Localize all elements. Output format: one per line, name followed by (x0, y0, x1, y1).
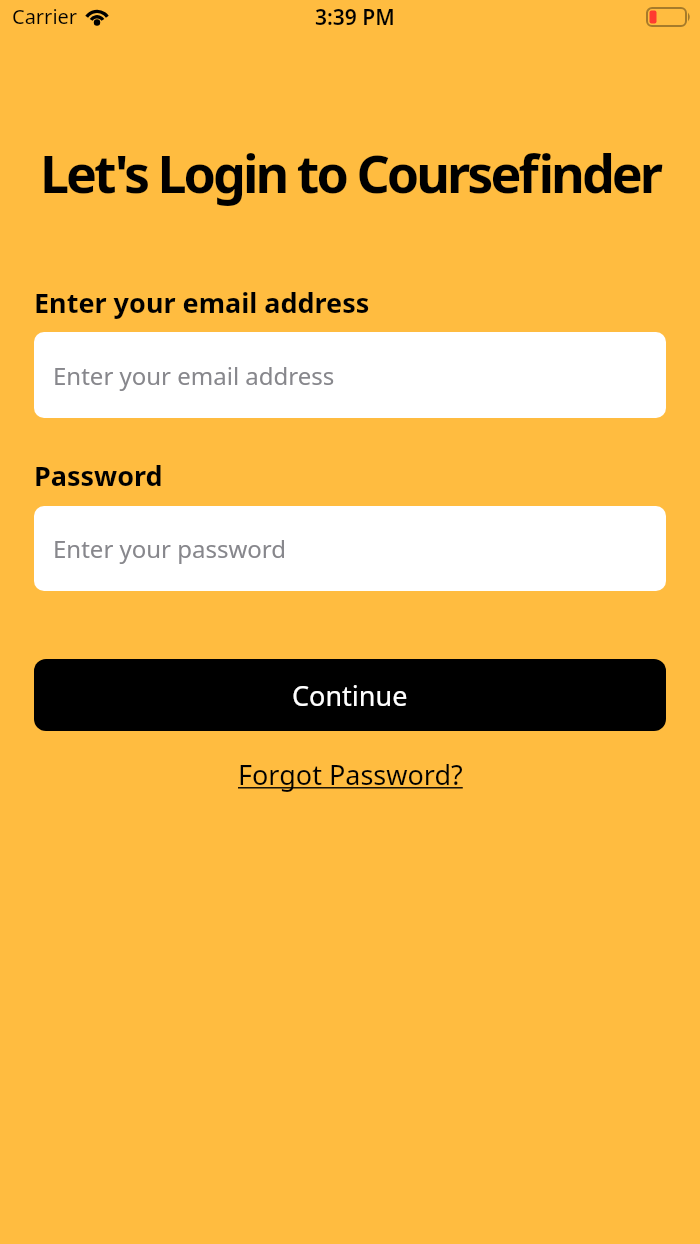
staticText: Let's Login to Coursefinder (0, 137, 700, 208)
button[interactable]: Enter your password (34, 506, 666, 591)
staticText: Enter your email address (34, 284, 370, 321)
staticText: Continue (292, 677, 408, 714)
staticText: Password (34, 457, 163, 494)
staticText: Enter your email address (53, 359, 335, 392)
button[interactable]: Forgot Password? (238, 756, 463, 793)
button[interactable]: Continue (34, 659, 666, 731)
button[interactable]: Enter your email address (34, 332, 666, 418)
staticText: 3:39 PM (315, 3, 395, 32)
staticText: Carrier (12, 3, 78, 30)
staticText: Enter your password (53, 532, 287, 565)
